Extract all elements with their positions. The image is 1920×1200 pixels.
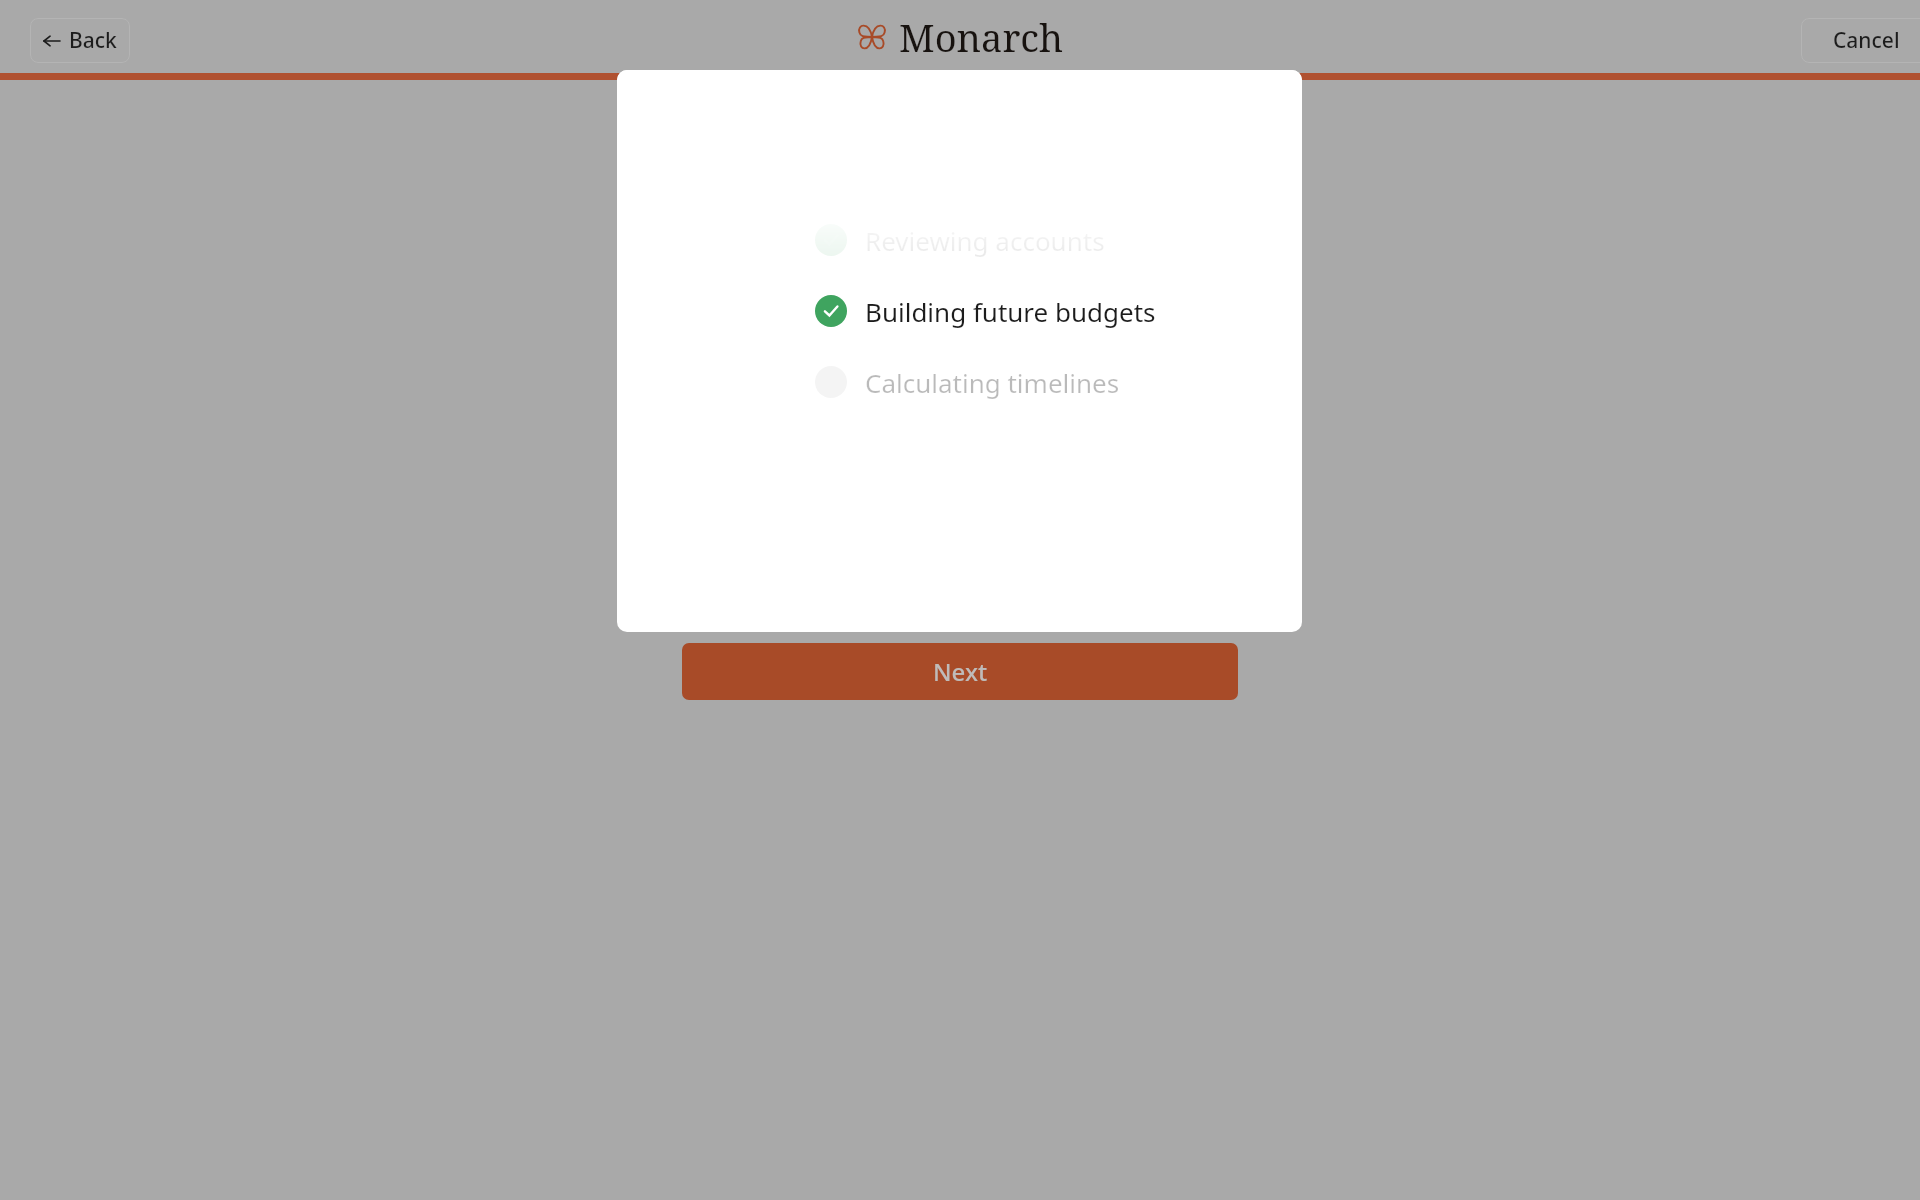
staticText: Reviewing accounts bbox=[865, 223, 1105, 258]
button[interactable]: Building future budgets bbox=[815, 289, 1235, 333]
staticText: Cancel bbox=[1833, 26, 1900, 55]
button[interactable]: Reviewing accounts bbox=[815, 218, 1235, 262]
other: Monarch logo bbox=[857, 22, 887, 52]
staticText: Calculating timelines bbox=[865, 365, 1120, 400]
button[interactable]: Cancel bbox=[1801, 18, 1920, 63]
button[interactable]: Next bbox=[682, 643, 1238, 700]
staticText: Monarch bbox=[899, 11, 1064, 63]
staticText: Building future budgets bbox=[865, 294, 1156, 329]
staticText: Next bbox=[933, 655, 988, 688]
button[interactable]: Back bbox=[30, 18, 130, 63]
button[interactable]: Calculating timelines bbox=[815, 360, 1235, 404]
staticText: Back bbox=[69, 26, 117, 55]
